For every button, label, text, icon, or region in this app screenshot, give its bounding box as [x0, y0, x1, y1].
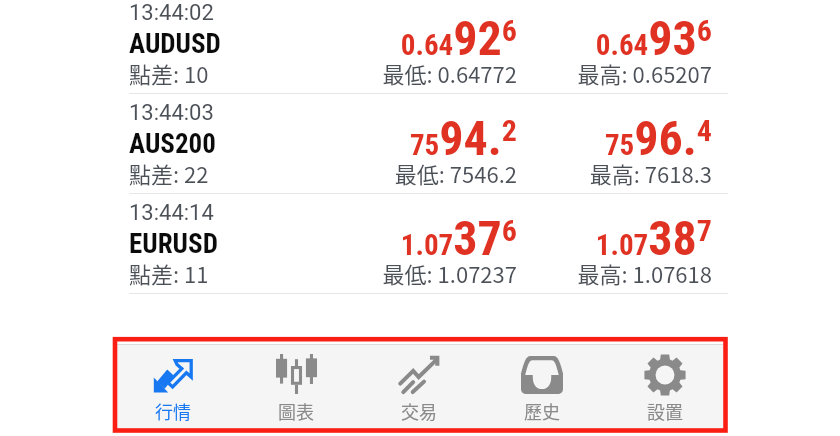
- staticText: 1.07387: [392, 210, 712, 266]
- staticText: 行情: [155, 398, 191, 424]
- staticText: AUDUSD: [129, 28, 221, 60]
- staticText: 點差: 11: [129, 257, 209, 289]
- staticText: 0.64926: [197, 10, 517, 66]
- staticText: 最低: 1.07237: [197, 257, 517, 289]
- button[interactable]: 圖表: [235, 344, 357, 429]
- button[interactable]: 歷史: [481, 344, 603, 429]
- button[interactable]: 13:44:03: [0, 93, 840, 194]
- staticText: 最高: 1.07618: [392, 257, 712, 289]
- staticText: 13:44:02: [129, 0, 214, 26]
- staticText: 7594.2: [197, 110, 517, 166]
- staticText: 點差: 22: [129, 157, 209, 189]
- button[interactable]: 設置: [604, 344, 726, 429]
- staticText: 0.64936: [392, 10, 712, 66]
- staticText: 13:44:14: [129, 200, 214, 226]
- button[interactable]: 13:44:14: [0, 193, 840, 294]
- staticText: 圖表: [278, 398, 314, 424]
- staticText: 最低: 0.64772: [197, 57, 517, 89]
- button[interactable]: 行情: [112, 344, 234, 429]
- staticText: EURUSD: [129, 228, 218, 260]
- staticText: AUS200: [129, 128, 216, 160]
- staticText: 最高: 0.65207: [392, 57, 712, 89]
- button[interactable]: 13:44:02: [0, 0, 840, 94]
- staticText: 7596.4: [392, 110, 712, 166]
- staticText: 設置: [647, 398, 683, 424]
- button[interactable]: 交易: [358, 344, 480, 429]
- staticText: 最高: 7618.3: [392, 157, 712, 189]
- staticText: 最低: 7546.2: [197, 157, 517, 189]
- staticText: 交易: [401, 398, 437, 424]
- staticText: 點差: 10: [129, 57, 209, 89]
- staticText: 13:44:03: [129, 100, 214, 126]
- staticText: 歷史: [524, 398, 560, 424]
- staticText: 1.07376: [197, 210, 517, 266]
